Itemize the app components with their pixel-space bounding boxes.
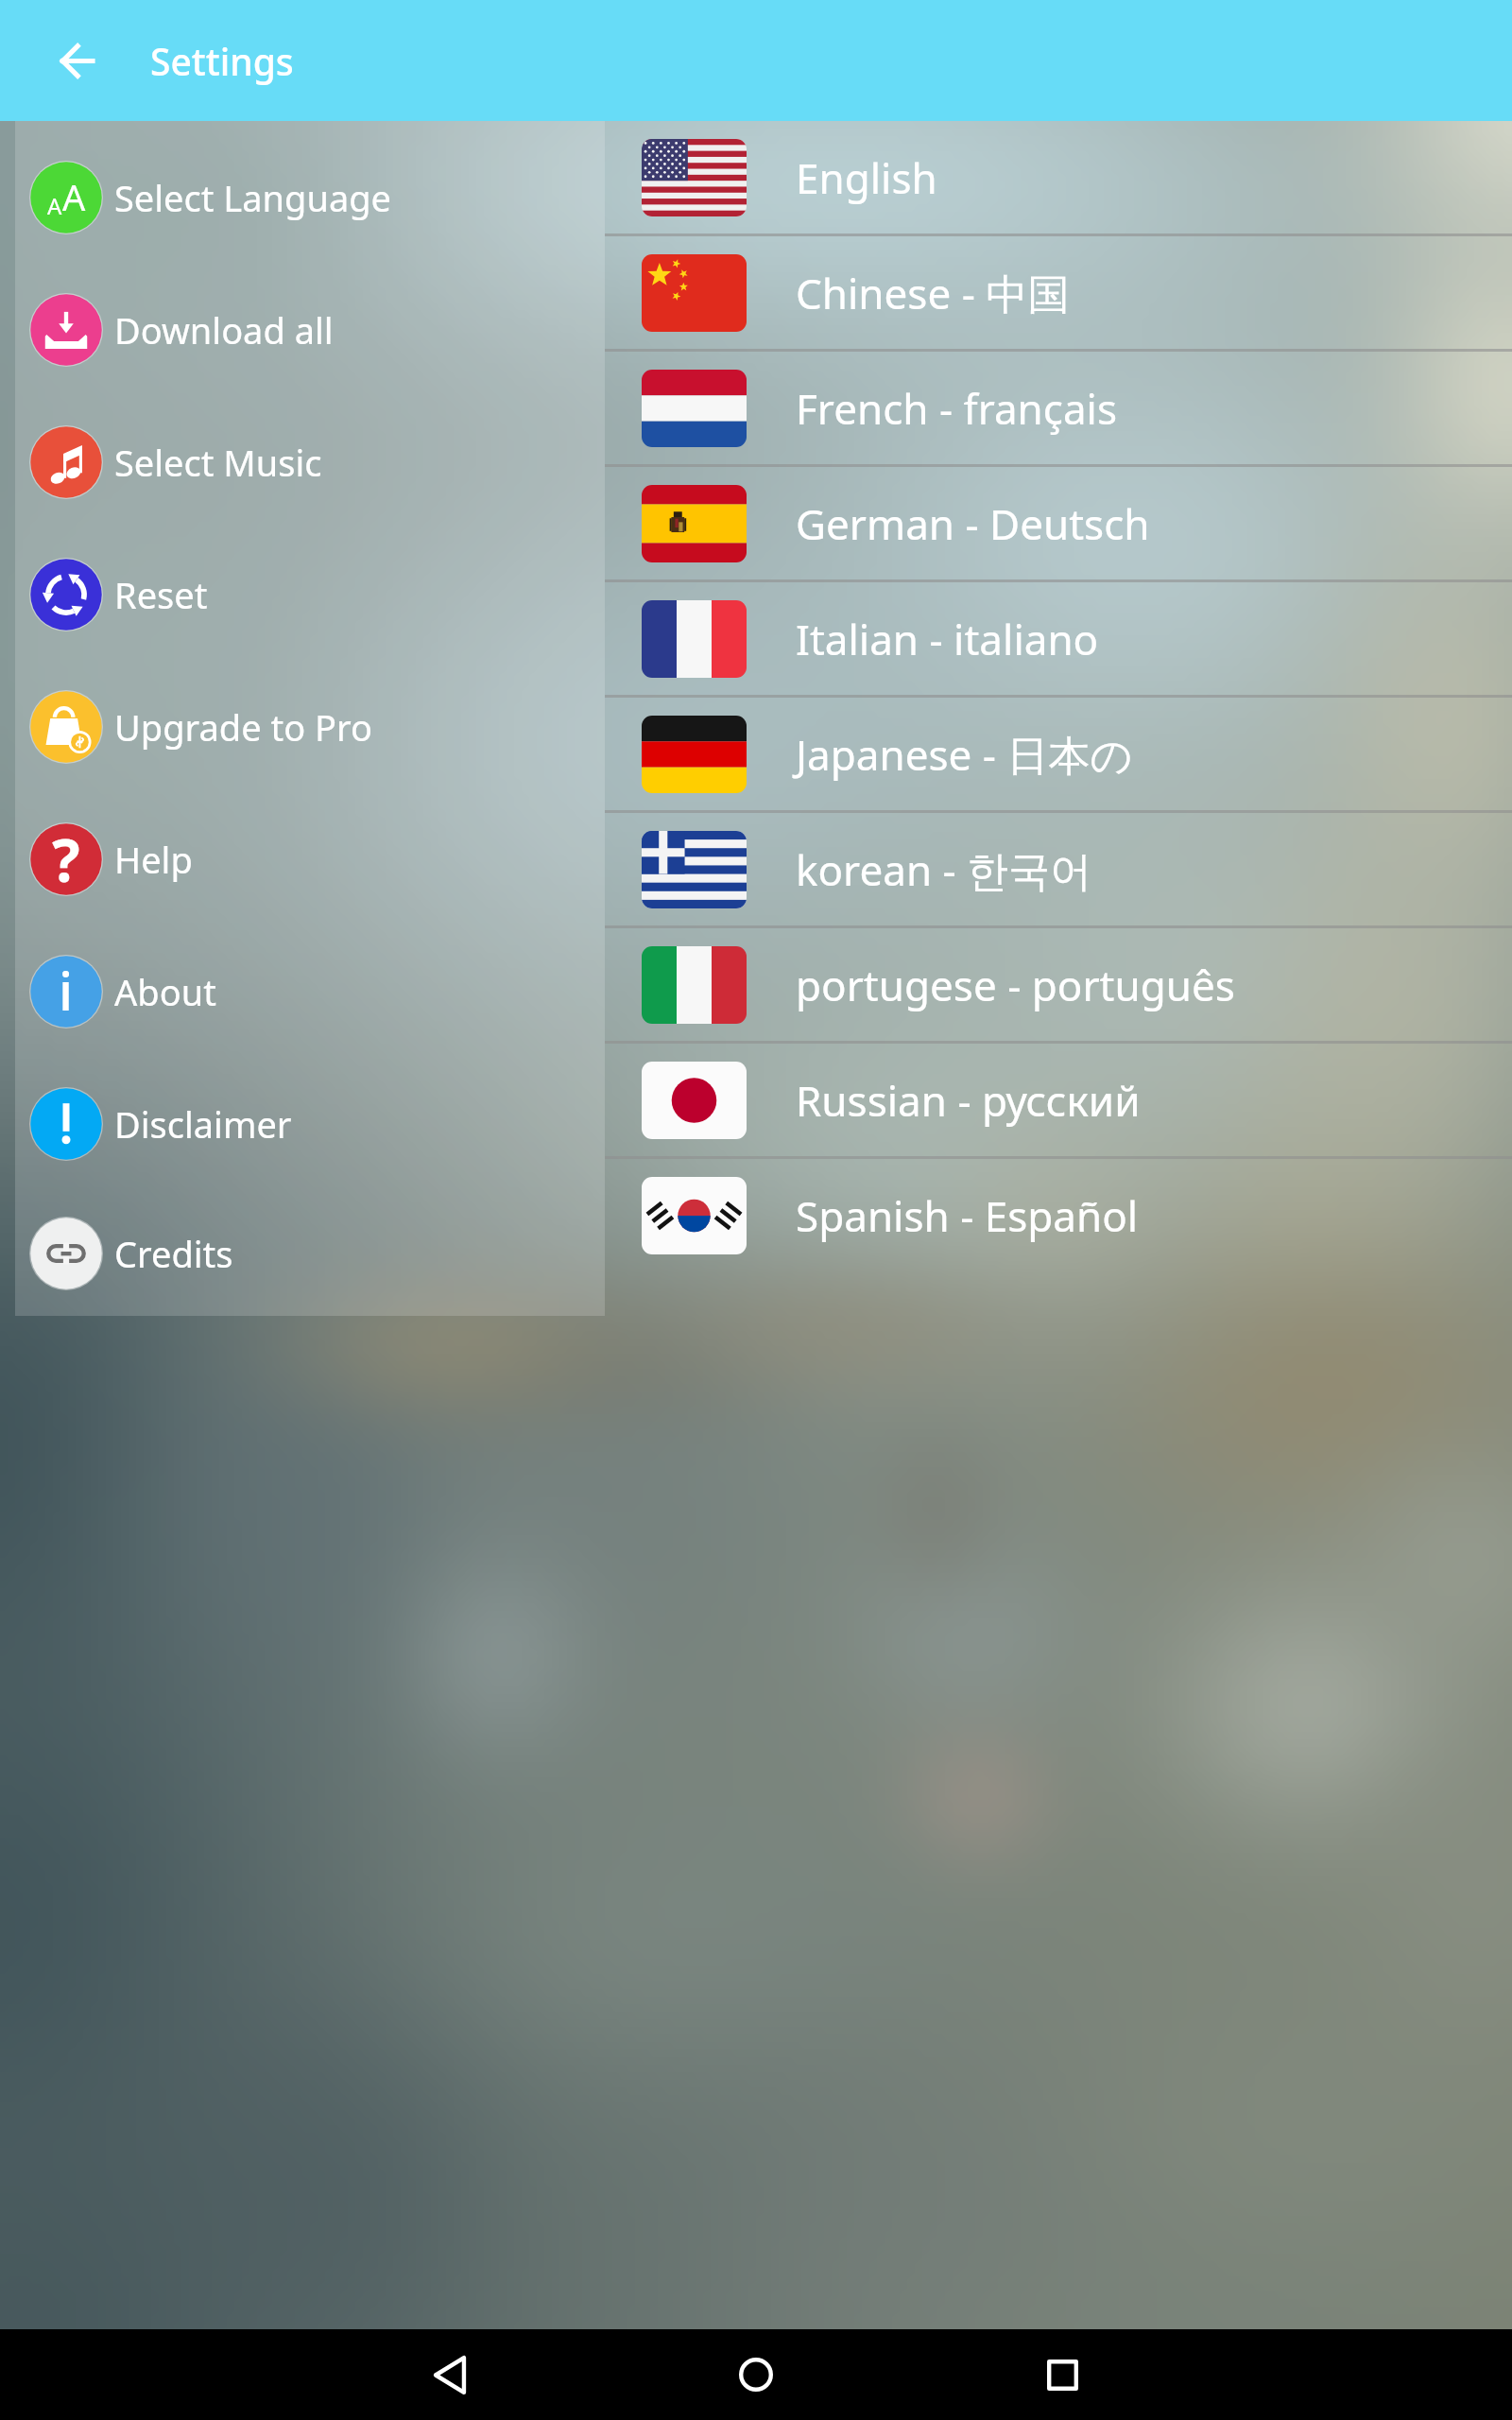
staticText: Download all — [114, 305, 334, 354]
staticText: korean - 한국어 — [796, 841, 1092, 898]
button[interactable]: French - français — [605, 352, 1512, 464]
staticText: A — [47, 190, 62, 221]
button[interactable]: German - Deutsch — [605, 467, 1512, 579]
button[interactable]: i — [15, 925, 605, 1058]
button[interactable]: Back — [403, 2329, 497, 2420]
button[interactable]: Recents — [1015, 2329, 1109, 2420]
button[interactable]: Russian - русский — [605, 1044, 1512, 1156]
staticText: portugese - português — [796, 957, 1235, 1013]
button[interactable]: Select Music — [15, 396, 605, 528]
staticText: Chinese - 中国 — [796, 265, 1070, 321]
button[interactable]: Reset — [15, 528, 605, 661]
button[interactable]: Download all — [15, 264, 605, 396]
staticText: German - Deutsch — [796, 495, 1150, 552]
button[interactable]: korean - 한국어 — [605, 813, 1512, 925]
button[interactable]: Japanese - 日本の — [605, 698, 1512, 810]
staticText: ? — [52, 820, 80, 893]
staticText: About — [114, 967, 216, 1016]
button[interactable]: Disclaimer — [15, 1058, 605, 1190]
button[interactable]: A — [15, 131, 605, 264]
staticText: A — [62, 172, 86, 221]
staticText: Help — [114, 835, 193, 884]
staticText: Select Language — [114, 173, 392, 222]
button[interactable]: Chinese - 中国 — [605, 236, 1512, 349]
staticText: Upgrade to Pro — [114, 702, 372, 752]
staticText: Italian - italiano — [796, 611, 1099, 667]
staticText: French - français — [796, 380, 1118, 437]
button[interactable]: Upgrade to Pro — [15, 661, 605, 793]
staticText: Reset — [114, 570, 208, 619]
button[interactable]: Home — [709, 2329, 803, 2420]
button[interactable]: Spanish - Español — [605, 1159, 1512, 1271]
staticText: Russian - русский — [796, 1072, 1141, 1129]
staticText: Japanese - 日本の — [796, 726, 1133, 783]
staticText: Disclaimer — [114, 1099, 292, 1149]
button[interactable]: portugese - português — [605, 928, 1512, 1041]
button[interactable]: English — [605, 121, 1512, 233]
button[interactable]: Credits — [15, 1190, 605, 1316]
staticText: Select Music — [114, 438, 322, 487]
staticText: Spanish - Español — [796, 1187, 1139, 1244]
button[interactable]: Italian - italiano — [605, 582, 1512, 695]
button[interactable]: ? — [15, 793, 605, 925]
staticText: i — [59, 954, 74, 1026]
staticText: Settings — [150, 36, 294, 86]
button[interactable]: Back — [43, 26, 111, 95]
staticText: English — [796, 149, 937, 206]
staticText: Credits — [114, 1229, 233, 1278]
